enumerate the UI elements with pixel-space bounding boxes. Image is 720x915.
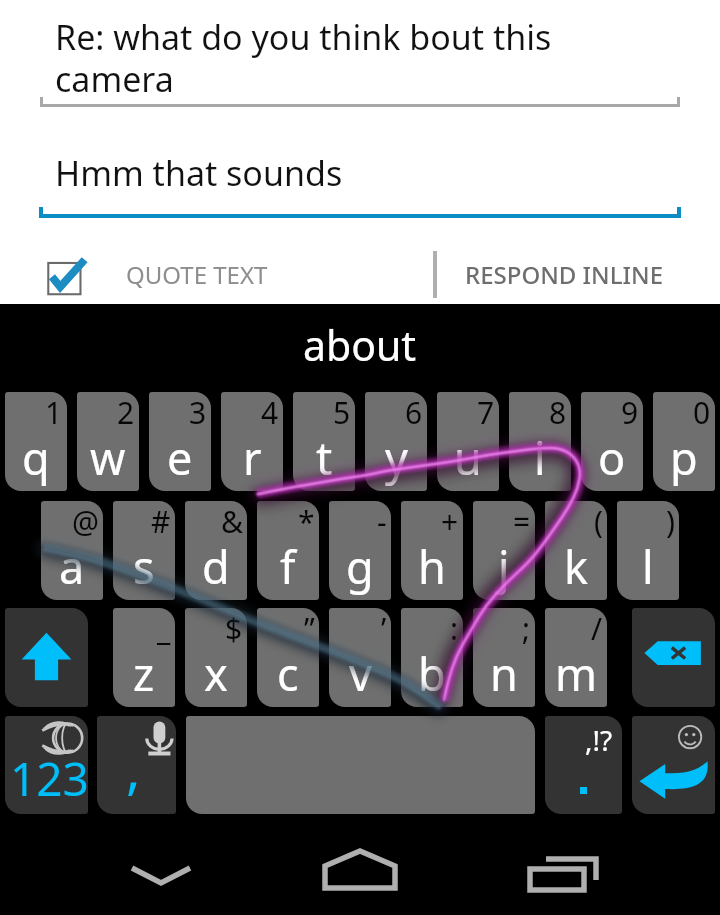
staticText: g xyxy=(346,536,374,597)
button[interactable]: Space xyxy=(186,716,535,814)
staticText: r xyxy=(243,427,262,488)
button[interactable]: + xyxy=(401,501,463,600)
staticText: h xyxy=(418,536,446,597)
staticText: 2 xyxy=(117,392,135,433)
button[interactable]: 4 xyxy=(221,392,283,491)
staticText: p xyxy=(670,427,698,488)
button[interactable]: Voice input xyxy=(97,716,176,814)
staticText: u xyxy=(454,427,482,488)
button[interactable]: Shift xyxy=(5,608,88,707)
button[interactable]: QUOTE TEXT xyxy=(30,244,330,304)
staticText: e xyxy=(167,427,193,488)
button[interactable]: RESPOND INLINE xyxy=(449,244,679,304)
button[interactable]: @ xyxy=(41,501,103,600)
staticText: f xyxy=(280,536,296,597)
staticText: : xyxy=(450,608,459,649)
staticText: 8 xyxy=(549,392,567,433)
button[interactable]: Back xyxy=(101,835,221,913)
button[interactable]: 0 xyxy=(653,392,715,491)
button[interactable]: ’ xyxy=(329,608,391,707)
staticText: camera xyxy=(55,56,174,102)
staticText: y xyxy=(385,427,408,488)
staticText: 4 xyxy=(261,392,279,433)
staticText: ; xyxy=(522,608,531,649)
button[interactable]: Punctuation xyxy=(545,716,622,814)
staticText: s xyxy=(133,536,155,597)
staticText: a xyxy=(59,536,85,597)
staticText: z xyxy=(133,643,155,704)
button[interactable]: about xyxy=(0,304,720,390)
button[interactable]: ” xyxy=(257,608,319,707)
staticText: , xyxy=(126,731,141,805)
staticText: = xyxy=(513,501,531,542)
staticText: * xyxy=(298,501,315,542)
button[interactable]: Enter xyxy=(632,716,715,814)
button[interactable]: 3 xyxy=(149,392,211,491)
staticText: ( xyxy=(594,501,603,542)
staticText: v xyxy=(349,643,372,704)
button[interactable]: 8 xyxy=(509,392,571,491)
staticText: c xyxy=(277,643,299,704)
staticText: & xyxy=(221,501,243,542)
staticText: 3 xyxy=(189,392,207,433)
staticText: QUOTE TEXT xyxy=(126,258,268,291)
staticText: # xyxy=(151,501,171,542)
staticText: o xyxy=(598,427,626,488)
button[interactable]: - xyxy=(329,501,391,600)
button[interactable]: 6 xyxy=(365,392,427,491)
staticText: about xyxy=(303,317,417,373)
staticText: @ xyxy=(72,501,99,542)
staticText: Hmm that sounds xyxy=(55,150,343,196)
staticText: ,!? xyxy=(585,721,613,759)
staticText: l xyxy=(642,536,654,597)
staticText: RESPOND INLINE xyxy=(465,258,664,291)
button[interactable]: = xyxy=(473,501,535,600)
staticText: + xyxy=(441,501,459,542)
staticText: 5 xyxy=(333,392,351,433)
button[interactable]: ; xyxy=(473,608,535,707)
staticText: - xyxy=(377,501,387,542)
staticText: q xyxy=(22,427,50,488)
button[interactable]: Recent apps xyxy=(502,835,622,913)
staticText: b xyxy=(418,643,446,704)
staticText: d xyxy=(202,536,230,597)
staticText: $ xyxy=(225,608,243,649)
staticText: i xyxy=(534,427,546,488)
button[interactable]: / xyxy=(545,608,607,707)
button[interactable]: 1 xyxy=(5,392,67,491)
staticText: k xyxy=(564,536,589,597)
button[interactable]: & xyxy=(185,501,247,600)
staticText: x xyxy=(204,643,228,704)
staticText: 9 xyxy=(621,392,639,433)
button[interactable]: 2 xyxy=(77,392,139,491)
staticText: _ xyxy=(157,608,171,649)
button[interactable]: Numbers and symbols xyxy=(5,716,88,814)
button[interactable]: Home xyxy=(300,835,420,913)
staticText: / xyxy=(591,608,603,649)
staticText: 123 xyxy=(10,747,88,810)
staticText: n xyxy=(490,643,518,704)
staticText: t xyxy=(316,427,333,488)
button[interactable]: 7 xyxy=(437,392,499,491)
staticText: 0 xyxy=(693,392,711,433)
button[interactable]: # xyxy=(113,501,175,600)
button[interactable]: 9 xyxy=(581,392,643,491)
button[interactable]: : xyxy=(401,608,463,707)
staticText: ” xyxy=(304,608,315,649)
staticText: j xyxy=(498,536,510,597)
button[interactable]: 5 xyxy=(293,392,355,491)
button[interactable]: _ xyxy=(113,608,175,707)
staticText: ’ xyxy=(381,608,387,649)
staticText: m xyxy=(555,643,598,704)
staticText: ) xyxy=(666,501,675,542)
staticText: 7 xyxy=(477,392,495,433)
staticText: 1 xyxy=(45,392,63,433)
button[interactable]: Backspace xyxy=(632,608,715,707)
staticText: 6 xyxy=(405,392,423,433)
staticText: w xyxy=(90,427,126,488)
button[interactable]: $ xyxy=(185,608,247,707)
button[interactable]: ( xyxy=(545,501,607,600)
staticText: Re: what do you think bout this xyxy=(55,14,552,60)
button[interactable]: * xyxy=(257,501,319,600)
button[interactable]: ) xyxy=(617,501,679,600)
